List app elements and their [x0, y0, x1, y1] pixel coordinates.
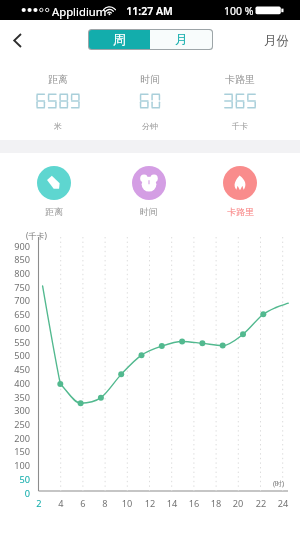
staticText: 卡路里	[195, 73, 285, 86]
staticText: 时间	[105, 73, 195, 86]
button[interactable]: 周	[89, 30, 150, 49]
staticText: 100	[0, 459, 30, 472]
staticText: 月	[175, 32, 188, 48]
staticText: 12	[140, 497, 160, 510]
staticText: 500	[0, 349, 30, 362]
staticText: 900	[0, 240, 30, 253]
staticText: 千卡	[195, 121, 285, 131]
staticText: 16	[184, 497, 204, 510]
staticText: 800	[0, 267, 30, 280]
staticText: 0	[0, 487, 30, 500]
staticText: 14	[162, 497, 182, 510]
staticText: Applidium	[52, 4, 107, 19]
staticText: 750	[0, 281, 30, 294]
button[interactable]: 卡路里	[195, 62, 285, 136]
staticText: 6	[73, 497, 93, 510]
staticText: 22	[251, 497, 271, 510]
staticText: 18	[206, 497, 226, 510]
staticText: 20	[228, 497, 248, 510]
button[interactable]: 卡路里	[210, 166, 270, 222]
staticText: 卡路里	[227, 206, 254, 217]
button[interactable]: 时间	[105, 62, 195, 136]
staticText: 650	[0, 308, 30, 321]
staticText: 850	[0, 253, 30, 266]
staticText: 400	[0, 377, 30, 390]
button[interactable]: 时间	[119, 166, 179, 222]
staticText: 24	[273, 497, 293, 510]
button[interactable]: 月	[150, 30, 212, 49]
staticText: (千卡)	[26, 230, 47, 241]
staticText: 距离	[13, 73, 103, 86]
staticText: 450	[0, 363, 30, 376]
staticText: 8	[95, 497, 115, 510]
staticText: (时)	[273, 479, 285, 489]
staticText: 50	[0, 473, 30, 486]
staticText: 100 %	[224, 4, 254, 18]
staticText: 350	[0, 391, 30, 404]
staticText: 时间	[140, 206, 158, 217]
staticText: 300	[0, 404, 30, 417]
staticText: 米	[13, 121, 103, 131]
staticText: 150	[0, 445, 30, 458]
staticText: 分钟	[105, 121, 195, 131]
staticText: 周	[113, 32, 126, 48]
staticText: 700	[0, 294, 30, 307]
staticText: 550	[0, 336, 30, 349]
staticText: 2	[29, 497, 49, 510]
staticText: 月份	[264, 33, 289, 49]
staticText: 11:27 AM	[118, 4, 181, 18]
button[interactable]: 距离	[13, 62, 103, 136]
staticText: 200	[0, 432, 30, 445]
staticText: 距离	[45, 206, 63, 217]
staticText: 600	[0, 322, 30, 335]
staticText: 10	[117, 497, 137, 510]
staticText: 4	[51, 497, 71, 510]
button[interactable]: 月份	[258, 26, 294, 55]
button[interactable]: 距离	[24, 166, 84, 222]
staticText: 250	[0, 418, 30, 431]
button[interactable]: Back	[3, 25, 32, 56]
